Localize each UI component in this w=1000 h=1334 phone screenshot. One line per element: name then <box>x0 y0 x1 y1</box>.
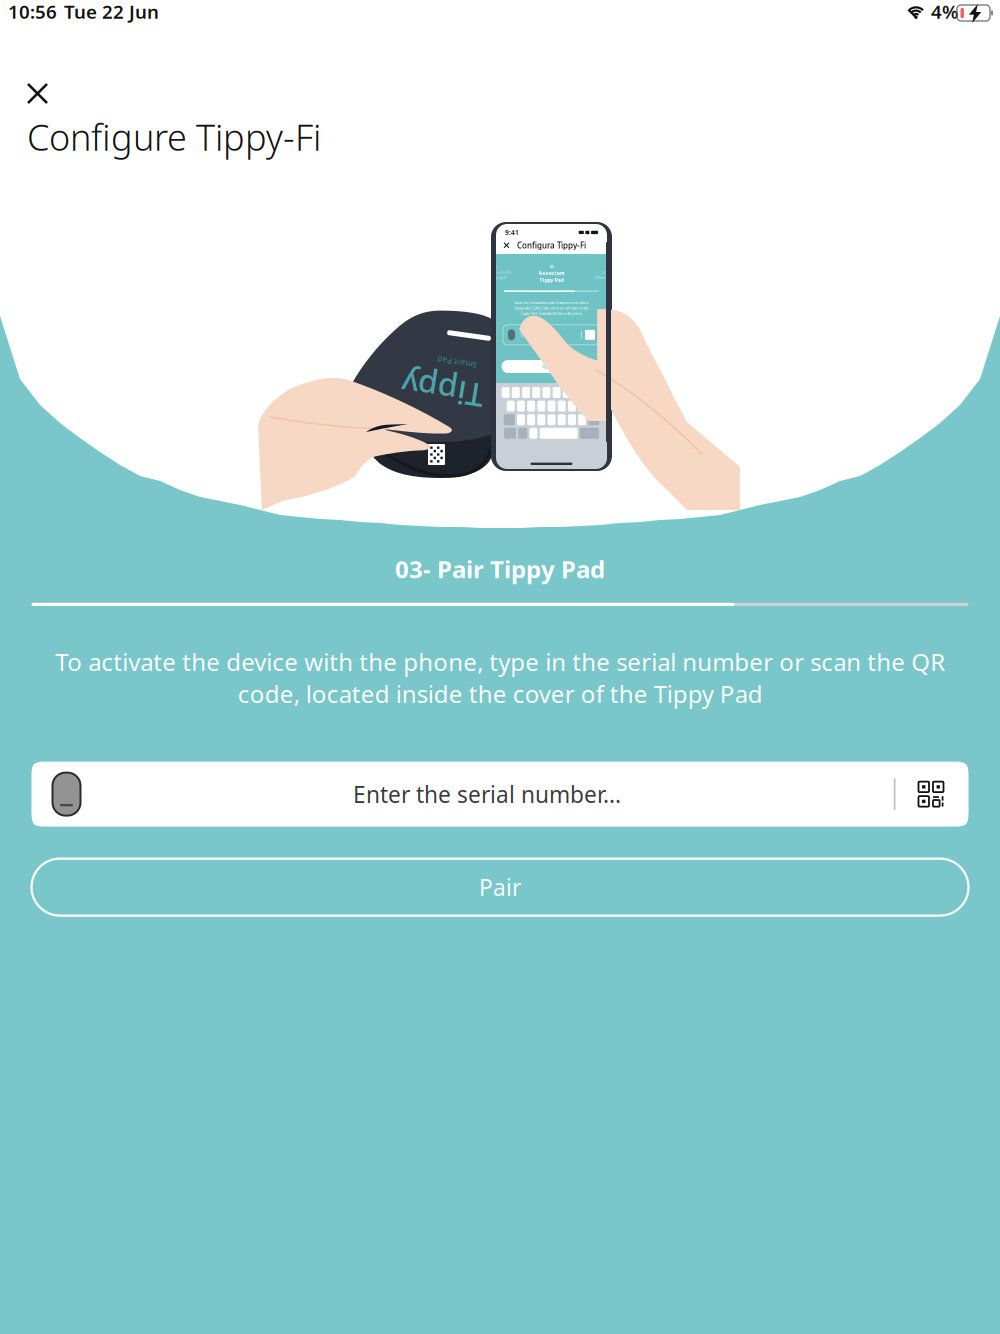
staticText: Tue 22 Jun <box>64 0 159 24</box>
staticText: Allarme <box>595 275 610 280</box>
staticText: Smart Pad <box>437 357 477 368</box>
staticText: Configura Tippy-Fi <box>517 240 586 251</box>
staticText: fotografa il QR Code che trovi all'inter… <box>514 305 588 310</box>
staticText: 9:41 <box>505 228 519 237</box>
button[interactable]: Enter the serial number... <box>31 762 968 827</box>
staticText: 03 <box>549 264 553 269</box>
staticText: Enter the serial number... <box>353 779 621 809</box>
staticText: Associare <box>538 269 564 276</box>
staticText: Pair <box>479 872 521 902</box>
staticText: Associa <box>542 363 561 370</box>
button[interactable]: Close <box>18 74 57 113</box>
staticText: Tippy-Fi <box>493 275 507 280</box>
staticText: Inserisci manualmente il numero seriale … <box>514 300 588 305</box>
button[interactable]: Pair <box>31 859 968 916</box>
staticText: 10:56 <box>8 0 57 24</box>
staticText: Test <box>602 269 610 275</box>
staticText: 03- Pair Tippy Pad <box>395 553 605 585</box>
staticText: Tippy Pad <box>539 276 563 283</box>
staticText: Tippy Pad. Dopodiché tocca Associa. <box>520 310 582 316</box>
staticText: Configure Tippy-Fi <box>27 113 321 161</box>
staticText: 1234 <box>519 332 527 337</box>
staticText: Tippy <box>401 369 484 411</box>
staticText: 02 <box>493 264 497 269</box>
staticText: 4% <box>931 0 958 24</box>
staticText: To activate the device with the phone, t… <box>55 646 945 710</box>
staticText: Connetti <box>493 269 512 275</box>
